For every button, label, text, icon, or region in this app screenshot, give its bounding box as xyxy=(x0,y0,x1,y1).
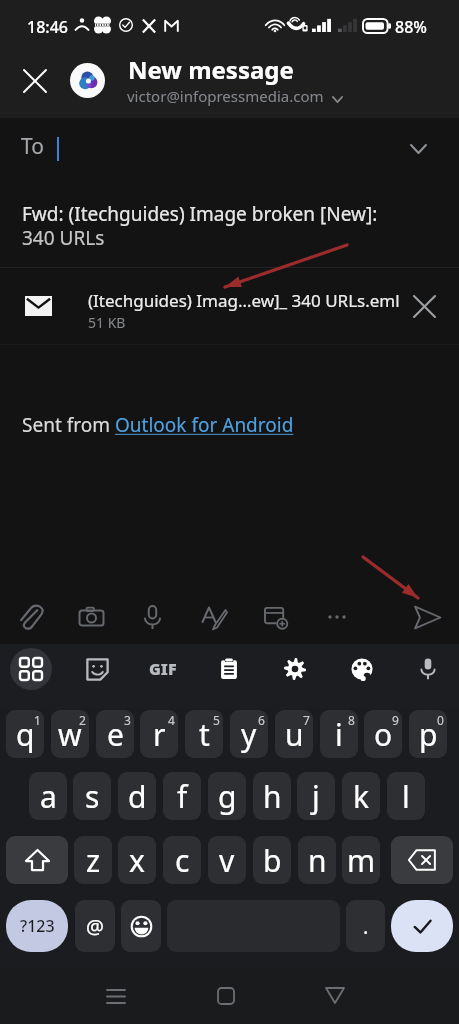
button[interactable]: Back xyxy=(321,981,349,1009)
button[interactable]: n xyxy=(298,836,336,884)
button[interactable]: Home xyxy=(212,982,240,1010)
staticText: e xyxy=(107,714,124,755)
button[interactable]: Shift xyxy=(6,836,68,884)
staticText: f xyxy=(177,776,188,817)
button[interactable]: g xyxy=(208,772,246,820)
staticText: victor@infopressmedia.com xyxy=(127,86,324,106)
button[interactable]: Voice input xyxy=(407,648,449,690)
staticText: b xyxy=(263,840,282,881)
button[interactable]: w xyxy=(51,710,89,758)
staticText: g xyxy=(218,776,237,817)
button[interactable]: m xyxy=(342,836,380,884)
button[interactable]: q xyxy=(6,710,44,758)
button[interactable]: o xyxy=(364,710,402,758)
staticText: w xyxy=(58,714,82,755)
staticText: Outlook for Android xyxy=(115,412,294,438)
button[interactable]: Change account xyxy=(326,88,348,110)
button[interactable]: k xyxy=(342,772,380,820)
button[interactable]: y xyxy=(230,710,268,758)
staticText: 6 xyxy=(258,712,265,728)
staticText: o xyxy=(374,714,393,755)
button[interactable]: Sent from xyxy=(0,345,459,590)
button[interactable]: i xyxy=(320,710,358,758)
button[interactable]: e xyxy=(96,710,134,758)
staticText: n xyxy=(308,840,327,881)
button[interactable]: Clipboard xyxy=(208,648,250,690)
button[interactable]: j xyxy=(297,772,335,820)
button[interactable]: h xyxy=(253,772,291,820)
staticText: New message xyxy=(128,53,294,86)
button[interactable]: ?123 xyxy=(6,900,68,952)
button[interactable]: Recents xyxy=(102,982,130,1010)
staticText: 7 xyxy=(303,712,310,728)
staticText: 5 xyxy=(213,712,220,728)
button[interactable]: Remove attachment xyxy=(410,292,438,320)
button[interactable]: Enter xyxy=(391,900,453,952)
button[interactable]: Send xyxy=(405,595,449,639)
staticText: . xyxy=(363,913,369,940)
staticText: 88% xyxy=(395,16,427,38)
button[interactable]: . xyxy=(346,900,385,952)
button[interactable]: b xyxy=(253,836,291,884)
staticText: x xyxy=(129,840,145,881)
button[interactable]: z xyxy=(74,836,112,884)
button[interactable]: Toolbox xyxy=(10,648,52,690)
button[interactable]: Close xyxy=(13,59,57,103)
button[interactable]: x xyxy=(118,836,156,884)
staticText: @ xyxy=(86,913,104,940)
staticText: (Itechguides) Imag…ew]_ 340 URLs.eml xyxy=(88,289,400,312)
button[interactable]: @ xyxy=(75,900,115,952)
button[interactable]: (Itechguides) Imag…ew]_ 340 URLs.eml xyxy=(0,268,459,344)
button[interactable]: f xyxy=(163,772,201,820)
staticText: Sent from xyxy=(22,412,115,438)
staticText: 2 xyxy=(79,712,86,728)
staticText: 1 xyxy=(34,712,41,728)
button[interactable]: Themes xyxy=(341,648,383,690)
button[interactable]: Backspace xyxy=(391,836,453,884)
button[interactable]: Voice message xyxy=(130,595,174,639)
button[interactable]: d xyxy=(118,772,156,820)
staticText: y xyxy=(241,714,257,755)
staticText: c xyxy=(175,840,190,881)
staticText: ?123 xyxy=(20,915,55,937)
staticText: 340 URLs xyxy=(22,225,105,251)
staticText: a xyxy=(40,776,57,817)
button[interactable]: Emoji xyxy=(121,900,161,952)
button[interactable]: a xyxy=(29,772,67,820)
button[interactable]: u xyxy=(275,710,313,758)
staticText: 4 xyxy=(168,712,175,728)
staticText: 0 xyxy=(437,712,444,728)
staticText: i xyxy=(335,714,343,755)
staticText: 8 xyxy=(348,712,355,728)
button[interactable]: Expand recipients xyxy=(404,135,432,163)
staticText: u xyxy=(285,714,304,755)
staticText: d xyxy=(128,776,147,817)
staticText: To xyxy=(21,132,44,161)
button[interactable]: p xyxy=(409,710,447,758)
button[interactable]: Stickers xyxy=(76,648,118,690)
button[interactable]: Attach xyxy=(9,595,53,639)
button[interactable]: More options xyxy=(315,595,359,639)
button[interactable]: r xyxy=(140,710,178,758)
staticText: p xyxy=(419,714,438,755)
button[interactable]: l xyxy=(387,772,425,820)
button[interactable]: Settings xyxy=(274,648,316,690)
button[interactable]: v xyxy=(208,836,246,884)
staticText: 18:46 xyxy=(27,16,68,38)
staticText: q xyxy=(16,714,35,755)
staticText: Fwd: (Itechguides) Image broken [New]: xyxy=(22,201,378,227)
staticText: 51 KB xyxy=(88,313,126,332)
button[interactable]: c xyxy=(163,836,201,884)
button[interactable]: Insert card xyxy=(254,595,298,639)
staticText: 9 xyxy=(392,712,399,728)
button[interactable]: t xyxy=(185,710,223,758)
staticText: GIF xyxy=(149,658,177,680)
button[interactable]: Formatting xyxy=(192,595,236,639)
button[interactable]: Fwd: (Itechguides) Image broken [New]: xyxy=(0,180,459,266)
button[interactable]: GIF xyxy=(142,648,184,690)
button[interactable]: s xyxy=(73,772,111,820)
button[interactable]: Camera xyxy=(69,595,113,639)
button[interactable]: To xyxy=(0,118,459,180)
staticText: t xyxy=(199,714,210,755)
